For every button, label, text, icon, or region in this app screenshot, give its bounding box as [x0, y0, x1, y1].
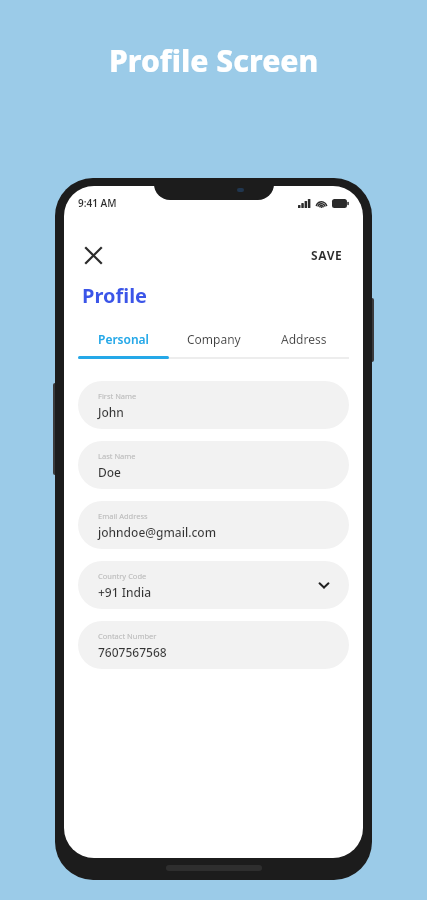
staticText: Address [281, 331, 327, 347]
staticText: Profile [82, 282, 148, 309]
staticText: First Name [98, 391, 137, 401]
button[interactable]: Address [259, 331, 349, 359]
staticText: John [98, 404, 124, 420]
button[interactable]: Email Address [78, 501, 349, 549]
button[interactable]: SAVE [305, 241, 349, 269]
button[interactable]: Last Name [78, 441, 349, 489]
staticText: SAVE [311, 247, 343, 263]
staticText: 7607567568 [98, 644, 167, 660]
other: Expand country code [317, 578, 331, 592]
staticText: Contact Number [98, 631, 157, 641]
button[interactable]: Close [78, 240, 108, 270]
staticText: +91 India [98, 584, 152, 600]
staticText: Last Name [98, 451, 136, 461]
button[interactable]: First Name [78, 381, 349, 429]
staticText: Doe [98, 464, 121, 480]
staticText: 9:41 AM [78, 196, 117, 210]
staticText: Country Code [98, 571, 147, 581]
button[interactable]: Contact Number [78, 621, 349, 669]
staticText: Email Address [98, 511, 148, 521]
staticText: Company [187, 331, 241, 347]
button[interactable]: Personal [78, 331, 169, 359]
staticText: Profile Screen [109, 40, 319, 81]
button[interactable]: Country Code [78, 561, 349, 609]
staticText: Personal [98, 331, 150, 347]
button[interactable]: Company [169, 331, 259, 359]
staticText: johndoe@gmail.com [98, 524, 217, 540]
